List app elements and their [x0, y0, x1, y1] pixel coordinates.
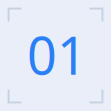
- staticText: 01: [27, 20, 87, 89]
- button[interactable]: Slide 01: [0, 0, 111, 111]
